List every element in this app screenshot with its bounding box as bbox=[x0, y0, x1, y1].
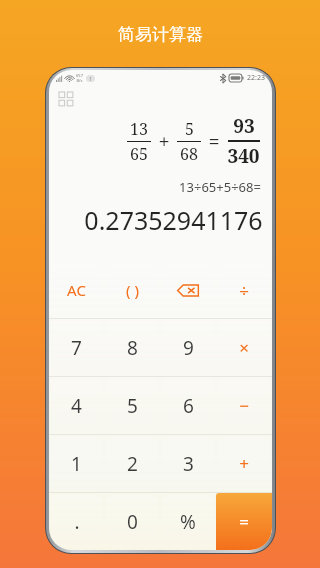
staticText: 22:23 bbox=[247, 73, 265, 83]
button[interactable]: Menu bbox=[55, 88, 77, 110]
staticText: + bbox=[158, 128, 170, 155]
staticText: = bbox=[239, 510, 249, 533]
button[interactable]: 5 bbox=[106, 379, 158, 432]
staticText: 340 bbox=[227, 143, 260, 169]
button[interactable]: + bbox=[218, 437, 270, 490]
staticText: 5 bbox=[127, 393, 138, 419]
button[interactable]: 6 bbox=[162, 379, 214, 432]
staticText: . bbox=[74, 509, 80, 535]
staticText: 0.27352941176 bbox=[84, 203, 263, 237]
staticText: 6 bbox=[183, 393, 194, 419]
staticText: 7 bbox=[71, 335, 82, 361]
button[interactable]: 8 bbox=[106, 321, 158, 374]
button[interactable]: 7 bbox=[51, 321, 102, 374]
button[interactable]: 3 bbox=[162, 437, 214, 490]
button[interactable]: Delete bbox=[162, 264, 214, 316]
button[interactable]: % bbox=[162, 495, 214, 548]
button[interactable]: 0 bbox=[106, 495, 158, 548]
staticText: ( ) bbox=[126, 280, 139, 300]
staticText: = bbox=[208, 128, 220, 155]
staticText: 简易计算器 bbox=[118, 24, 203, 45]
button[interactable]: 2 bbox=[106, 437, 158, 490]
staticText: AC bbox=[67, 280, 86, 300]
button[interactable]: AC bbox=[51, 264, 102, 316]
staticText: 93 bbox=[233, 113, 255, 139]
staticText: 1 bbox=[71, 451, 82, 477]
staticText: 8 bbox=[127, 335, 138, 361]
button[interactable]: ( ) bbox=[106, 264, 158, 316]
staticText: 9 bbox=[183, 335, 194, 361]
staticText: 65 bbox=[130, 143, 148, 165]
button[interactable]: = bbox=[216, 493, 272, 550]
staticText: + bbox=[239, 452, 249, 475]
staticText: − bbox=[239, 394, 249, 417]
button[interactable]: . bbox=[51, 495, 102, 548]
staticText: 5 bbox=[185, 118, 194, 140]
staticText: ÷ bbox=[239, 279, 249, 302]
button[interactable]: × bbox=[218, 321, 270, 374]
staticText: 13÷65+5÷68= bbox=[179, 178, 261, 196]
button[interactable]: 4 bbox=[51, 379, 102, 432]
staticText: 657 bbox=[76, 73, 83, 78]
staticText: % bbox=[180, 509, 196, 535]
staticText: 4 bbox=[71, 393, 82, 419]
button[interactable]: 9 bbox=[162, 321, 214, 374]
button[interactable]: − bbox=[218, 379, 270, 432]
button[interactable]: 1 bbox=[51, 437, 102, 490]
staticText: 0 bbox=[127, 509, 138, 535]
staticText: 68 bbox=[180, 143, 198, 165]
staticText: × bbox=[239, 336, 249, 359]
staticText: 13 bbox=[130, 118, 148, 140]
button[interactable]: ÷ bbox=[218, 264, 270, 316]
staticText: 1 bbox=[89, 76, 92, 82]
staticText: B/s bbox=[76, 78, 83, 83]
staticText: 3 bbox=[183, 451, 194, 477]
staticText: 2 bbox=[127, 451, 138, 477]
